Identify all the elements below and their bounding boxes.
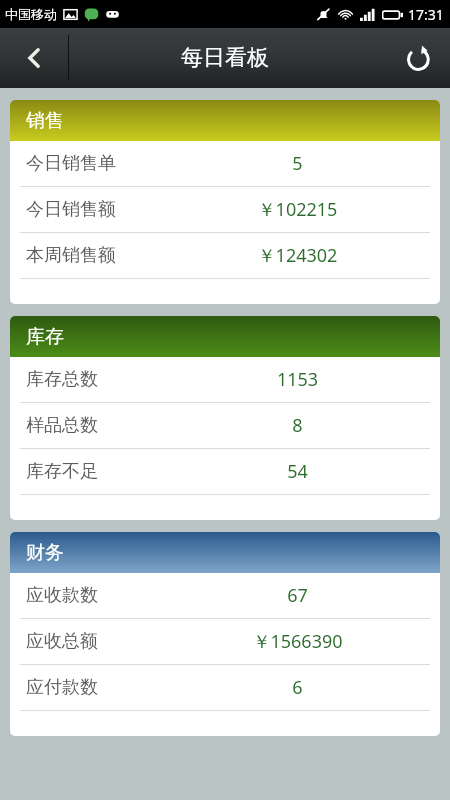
staticText: 财务 <box>26 541 64 565</box>
button[interactable]: 今日销售单 <box>10 141 440 186</box>
button[interactable]: Refresh <box>388 28 450 88</box>
staticText: 67 <box>155 583 440 608</box>
staticText: 1153 <box>155 367 440 392</box>
staticText: 8 <box>155 413 440 438</box>
button[interactable]: Back <box>0 28 68 88</box>
staticText: 应收总额 <box>26 630 155 653</box>
staticText: 库存不足 <box>26 460 155 483</box>
button[interactable]: 库存总数 <box>10 357 440 402</box>
button[interactable]: 应付款数 <box>10 665 440 710</box>
staticText: 54 <box>155 459 440 484</box>
staticText: 应付款数 <box>26 676 155 699</box>
staticText: ￥102215 <box>155 197 440 222</box>
staticText: 今日销售单 <box>26 152 155 175</box>
button[interactable]: 销售 <box>10 100 440 304</box>
staticText: 17:31 <box>408 5 444 24</box>
button[interactable]: 财务 <box>10 532 440 736</box>
button[interactable]: 库存不足 <box>10 449 440 494</box>
staticText: ￥1566390 <box>155 629 440 654</box>
button[interactable]: 样品总数 <box>10 403 440 448</box>
staticText: 库存 <box>26 325 64 349</box>
button[interactable]: 应收款数 <box>10 573 440 618</box>
staticText: 销售 <box>26 109 64 133</box>
button[interactable]: 今日销售额 <box>10 187 440 232</box>
staticText: 库存总数 <box>26 368 155 391</box>
staticText: 6 <box>155 675 440 700</box>
staticText: ￥124302 <box>155 243 440 268</box>
staticText: 5 <box>155 151 440 176</box>
staticText: 样品总数 <box>26 414 155 437</box>
staticText: 本周销售额 <box>26 244 155 267</box>
staticText: 中国移动 <box>5 6 57 22</box>
staticText: 今日销售额 <box>26 198 155 221</box>
button[interactable]: 库存 <box>10 316 440 520</box>
button[interactable]: 应收总额 <box>10 619 440 664</box>
staticText: 应收款数 <box>26 584 155 607</box>
button[interactable]: 本周销售额 <box>10 233 440 278</box>
staticText: 每日看板 <box>181 44 269 72</box>
